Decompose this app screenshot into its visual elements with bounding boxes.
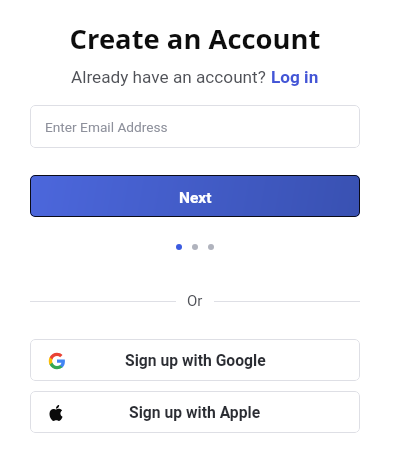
staticText: Enter Email Address [45, 119, 168, 135]
staticText: Log in [271, 67, 319, 87]
other: Apple [48, 405, 64, 421]
staticText: Or [187, 292, 203, 310]
staticText: Create an Account [0, 20, 390, 57]
staticText: Sign up with Apple [129, 403, 261, 421]
button[interactable]: Enter Email Address [30, 105, 360, 148]
button[interactable]: Apple [30, 391, 360, 433]
staticText: Next [179, 189, 212, 207]
other: Google [48, 352, 66, 370]
button[interactable]: Google [30, 339, 360, 381]
button[interactable]: Log in [271, 67, 319, 87]
button[interactable]: Next [30, 175, 360, 217]
staticText: Sign up with Google [125, 351, 266, 369]
staticText: Already have an account? [71, 67, 266, 87]
